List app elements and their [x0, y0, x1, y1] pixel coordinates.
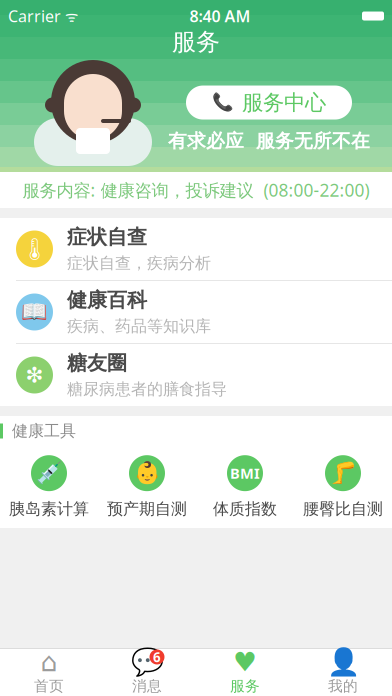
staticText: BMI	[230, 463, 260, 483]
button[interactable]: 🌡	[0, 218, 392, 280]
staticText: 8:40 AM	[189, 5, 250, 27]
staticText: 服务中心	[242, 89, 326, 116]
staticText: 👤	[326, 647, 359, 677]
staticText: 有求必应 服务无所不在	[168, 129, 370, 152]
button[interactable]: ♥	[196, 649, 294, 696]
staticText: 服务内容: 健康咨询，投诉建议 (08:00-22:00)	[22, 178, 369, 201]
staticText: 🦵	[329, 461, 356, 485]
staticText: 💬	[130, 647, 163, 677]
staticText: 腰臀比自测	[303, 499, 383, 519]
staticText: 体质指数	[213, 499, 277, 519]
staticText: 预产期自测	[107, 499, 187, 519]
button[interactable]: 📞	[186, 85, 352, 119]
button[interactable]: BMI	[196, 446, 294, 528]
button[interactable]: 💉	[0, 446, 98, 528]
staticText: 🌡	[21, 237, 48, 261]
staticText: 健康百科	[67, 288, 147, 312]
staticText: 消息	[132, 677, 162, 695]
staticText: Carrier	[8, 5, 61, 27]
staticText: 服务	[230, 677, 260, 695]
staticText: 糖友圈	[67, 351, 127, 375]
staticText: 糖尿病患者的膳食指导	[67, 379, 227, 399]
staticText: ᯤ	[61, 6, 78, 26]
button[interactable]: 👶	[98, 446, 196, 528]
staticText: 症状自查	[67, 225, 147, 249]
staticText: 胰岛素计算	[9, 499, 89, 519]
button[interactable]: 🦵	[294, 446, 392, 528]
staticText: 症状自查，疾病分析	[67, 253, 211, 273]
button[interactable]: 📖	[0, 281, 392, 343]
staticText: 首页	[34, 677, 64, 695]
staticText: 💉	[35, 461, 62, 485]
staticText: 我的	[328, 677, 358, 695]
staticText: 📖	[21, 300, 48, 324]
button[interactable]: ⌂	[0, 649, 98, 696]
staticText: ❇	[25, 363, 43, 387]
staticText: ⌂	[40, 647, 57, 677]
staticText: ♥	[233, 647, 257, 677]
button[interactable]: 💬	[98, 649, 196, 696]
staticText: 📞	[212, 93, 234, 112]
staticText: 服务	[172, 27, 220, 57]
staticText: 疾病、药品等知识库	[67, 316, 211, 336]
button[interactable]: ❇	[0, 344, 392, 406]
staticText: 6	[153, 648, 161, 666]
button[interactable]: 👤	[294, 649, 392, 696]
staticText: 健康工具	[12, 421, 76, 441]
staticText: 👶	[133, 461, 160, 485]
